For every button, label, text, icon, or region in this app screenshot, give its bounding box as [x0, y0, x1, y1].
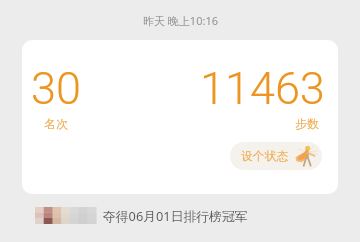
button[interactable]: 设个状态	[230, 142, 322, 170]
staticText: 夺得06月01日排行榜冠军	[103, 207, 248, 224]
button[interactable]: 30	[22, 40, 338, 194]
staticText: 设个状态	[241, 149, 289, 164]
staticText: 30	[31, 62, 81, 115]
staticText: 昨天 晚上10:16	[143, 13, 218, 28]
staticText: 11463	[200, 62, 325, 115]
button[interactable]: 夺得06月01日排行榜冠军	[22, 199, 282, 232]
staticText: 名次	[44, 116, 68, 131]
staticText: 步数	[295, 116, 319, 131]
other: Set status	[295, 145, 318, 167]
